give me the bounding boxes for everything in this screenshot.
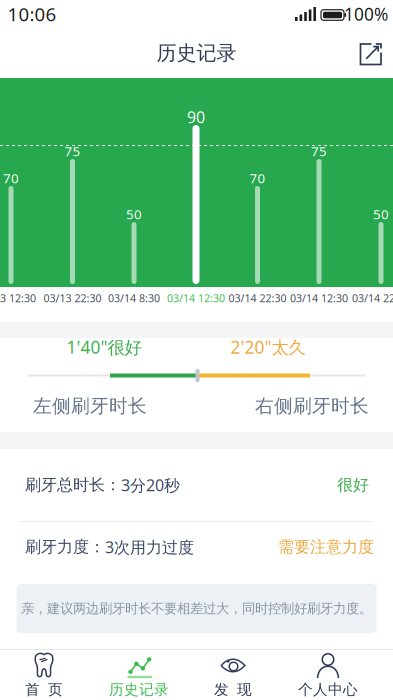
staticText: 10:06 [7,2,56,26]
staticText: 刷牙力度： [25,537,105,557]
staticText: 左侧刷牙时长 [33,394,147,417]
staticText: 很好 [337,475,369,495]
staticText: 右侧刷牙时长 [255,394,369,417]
button[interactable]: 03/14 22:30 [228,291,286,305]
staticText: 发 现 [214,680,252,698]
staticText: 刷牙总时长： [25,475,121,495]
staticText: 70 [249,169,265,187]
staticText: 历史记录 [109,680,169,698]
staticText: 75 [311,142,327,160]
button[interactable]: 03/14 12:30 [290,291,348,305]
button[interactable]: Share [350,34,390,74]
staticText: 03/14 22:30 [228,291,286,305]
button[interactable]: 03/13 22:30 [43,291,101,305]
staticText: 03/13 22:30 [43,291,101,305]
staticText: 03/14 12:30 [167,291,225,305]
staticText: 100% [344,2,388,25]
staticText: 90 [187,106,205,128]
staticText: 1'40"很好 [66,335,141,358]
staticText: 03/14 22:30 [352,291,393,305]
staticText: 03/14 8:30 [108,291,160,305]
button[interactable]: 发 现 [198,650,268,700]
staticText: 历史记录 [156,41,236,65]
button[interactable]: 03/14 22:30 [352,291,393,305]
button[interactable]: 3 12:30 [0,291,36,305]
button[interactable]: 03/14 8:30 [108,291,160,305]
staticText: 首 页 [25,680,63,698]
staticText: 亲，建议两边刷牙时长不要相差过大，同时控制好刷牙力度。 [21,600,372,617]
staticText: 3分20秒 [121,474,180,496]
staticText: 03/14 12:30 [290,291,348,305]
staticText: 75 [64,142,80,160]
staticText: 50 [126,205,142,223]
staticText: 需要注意力度 [278,537,374,557]
staticText: 3次用力过度 [105,536,194,558]
staticText: 个人中心 [298,680,358,698]
staticText: 50 [373,205,389,223]
button[interactable]: 03/14 12:30 [167,291,225,305]
staticText: 3 12:30 [0,291,36,305]
button[interactable]: 个人中心 [293,650,363,700]
button[interactable]: 首 页 [9,650,79,700]
staticText: 2'20"太久 [230,335,305,358]
button[interactable]: 历史记录 [104,650,174,700]
staticText: 70 [3,169,19,187]
